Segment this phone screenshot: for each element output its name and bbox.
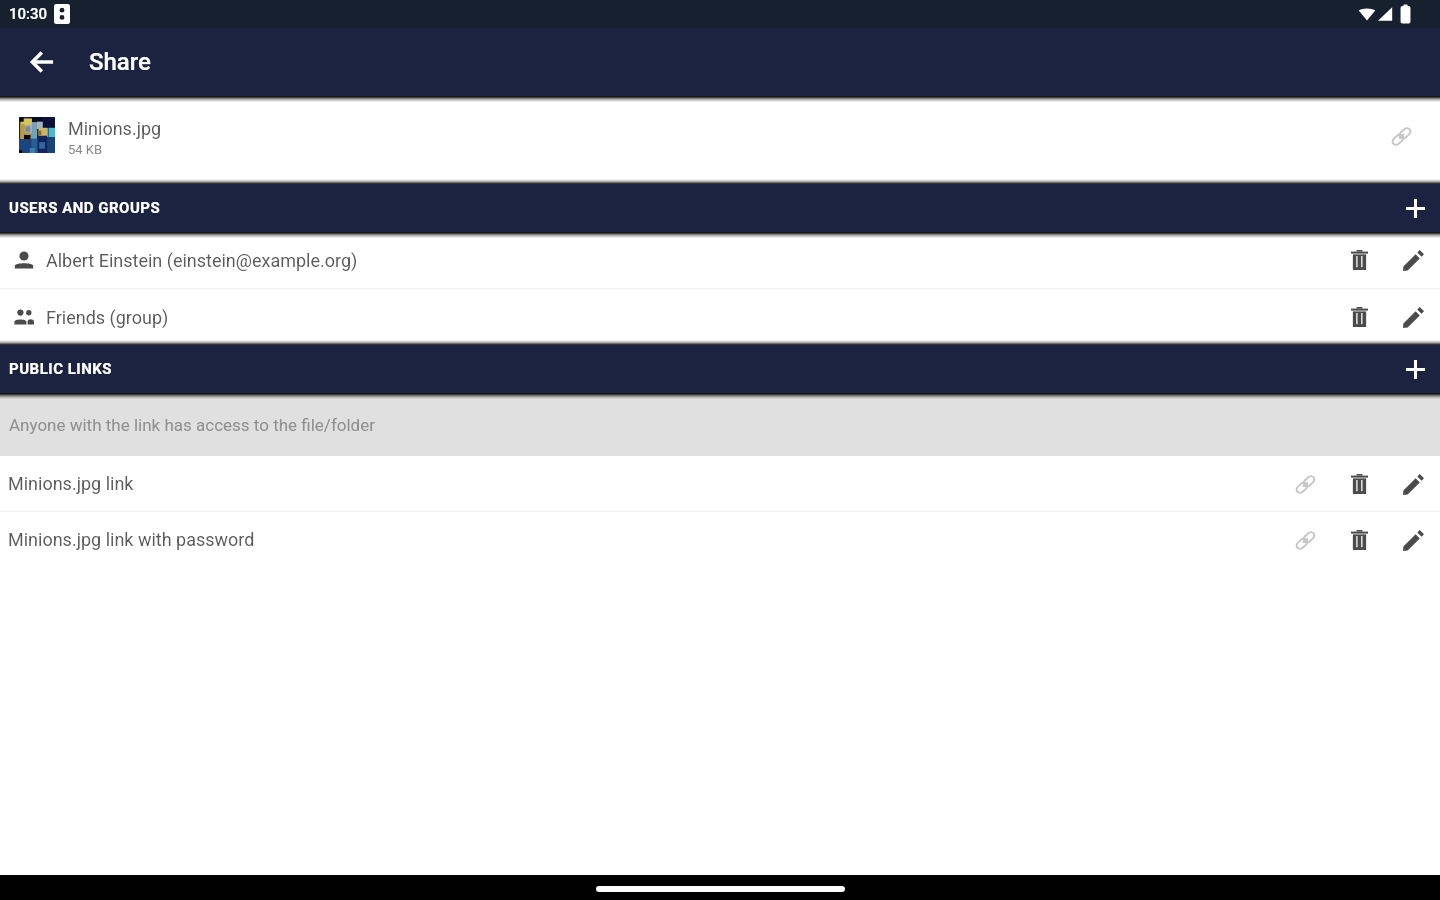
staticText: Share: [89, 48, 151, 76]
staticText: Minions.jpg: [68, 118, 162, 139]
button[interactable]: Minions.jpg link: [0, 456, 1440, 511]
staticText: 10:30: [9, 5, 48, 23]
button[interactable]: Add: [1393, 347, 1437, 391]
button[interactable]: Edit: [1389, 460, 1437, 508]
button[interactable]: Delete: [1335, 236, 1383, 284]
button[interactable]: Edit: [1389, 516, 1437, 564]
staticText: Albert Einstein (einstein@example.org): [46, 250, 358, 271]
button[interactable]: Delete: [1335, 293, 1383, 341]
staticText: USERS AND GROUPS: [9, 199, 161, 217]
staticText: Friends (group): [46, 307, 169, 328]
button[interactable]: Edit: [1389, 293, 1437, 341]
staticText: 54 KB: [68, 142, 103, 157]
button[interactable]: Albert Einstein (einstein@example.org): [0, 232, 1440, 288]
button[interactable]: Add: [1393, 186, 1437, 230]
staticText: PUBLIC LINKS: [9, 360, 113, 378]
button[interactable]: Minions.jpg link with password: [0, 512, 1440, 567]
button[interactable]: Copy link: [1281, 460, 1329, 508]
staticText: Minions.jpg link with password: [8, 529, 255, 550]
button[interactable]: Delete: [1335, 460, 1383, 508]
button[interactable]: Edit: [1389, 236, 1437, 284]
button[interactable]: Copy link: [1281, 516, 1329, 564]
button[interactable]: Back: [16, 36, 68, 88]
staticText: Anyone with the link has access to the f…: [9, 415, 375, 435]
staticText: Minions.jpg link: [8, 473, 134, 494]
button[interactable]: Friends (group): [0, 289, 1440, 345]
button[interactable]: Minions.jpg: [0, 96, 1440, 184]
button[interactable]: Share link: [1375, 110, 1427, 162]
button[interactable]: Delete: [1335, 516, 1383, 564]
